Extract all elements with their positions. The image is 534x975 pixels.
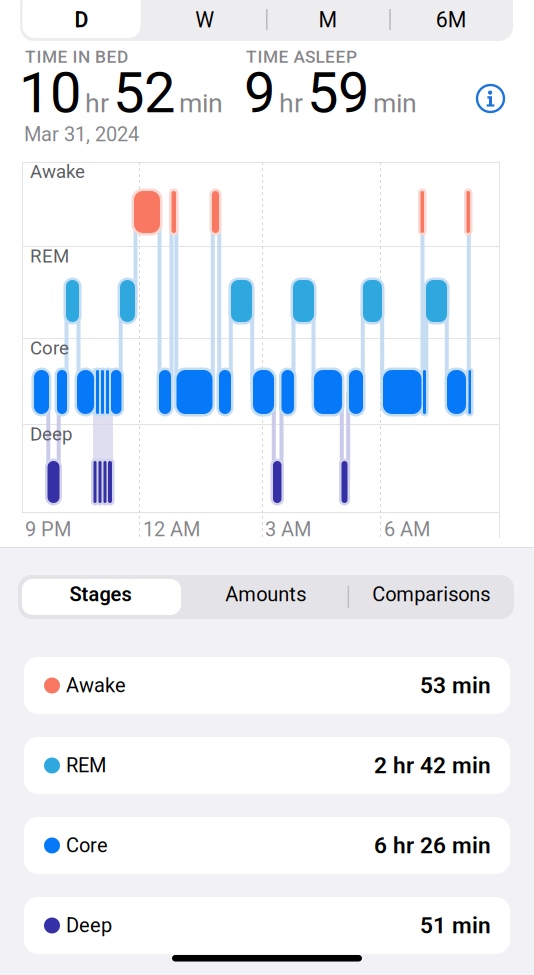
- staticText: min: [373, 88, 417, 118]
- staticText: Deep: [30, 423, 72, 445]
- staticText: TIME ASLEEP: [246, 47, 357, 67]
- staticText: 52: [113, 61, 175, 125]
- staticText: 3 AM: [265, 518, 311, 541]
- button[interactable]: Amounts: [183, 572, 348, 616]
- staticText: min: [179, 88, 223, 118]
- staticText: Mar 31, 2024: [24, 123, 139, 146]
- button[interactable]: Stages: [18, 572, 183, 616]
- button[interactable]: Comparisons: [349, 572, 514, 616]
- staticText: 6M: [436, 8, 467, 32]
- staticText: D: [74, 8, 88, 32]
- staticText: TIME IN BED: [25, 47, 128, 67]
- staticText: 53 min: [420, 673, 491, 698]
- staticText: hr: [85, 88, 109, 118]
- staticText: Core: [66, 834, 108, 857]
- staticText: REM: [30, 245, 69, 267]
- staticText: 51 min: [420, 913, 491, 938]
- staticText: 6 hr 26 min: [374, 833, 491, 858]
- staticText: 9: [244, 61, 275, 125]
- button[interactable]: 6M: [390, 0, 513, 40]
- staticText: 59: [307, 61, 369, 125]
- staticText: M: [318, 8, 337, 32]
- staticText: 10: [19, 61, 81, 125]
- staticText: REM: [66, 754, 106, 777]
- button[interactable]: Info: [477, 85, 504, 112]
- staticText: 2 hr 42 min: [374, 753, 491, 778]
- staticText: Deep: [66, 914, 112, 937]
- staticText: 6 AM: [384, 518, 430, 541]
- button[interactable]: W: [143, 0, 266, 40]
- button[interactable]: M: [266, 0, 389, 40]
- staticText: 12 AM: [143, 518, 200, 541]
- staticText: 9 PM: [25, 518, 71, 541]
- staticText: Awake: [66, 674, 126, 697]
- staticText: Amounts: [225, 583, 306, 606]
- staticText: Comparisons: [372, 583, 490, 606]
- staticText: Core: [30, 337, 69, 359]
- staticText: hr: [279, 88, 303, 118]
- staticText: Awake: [30, 161, 85, 182]
- button[interactable]: D: [20, 0, 143, 40]
- staticText: Stages: [69, 583, 131, 606]
- staticText: W: [195, 8, 214, 32]
